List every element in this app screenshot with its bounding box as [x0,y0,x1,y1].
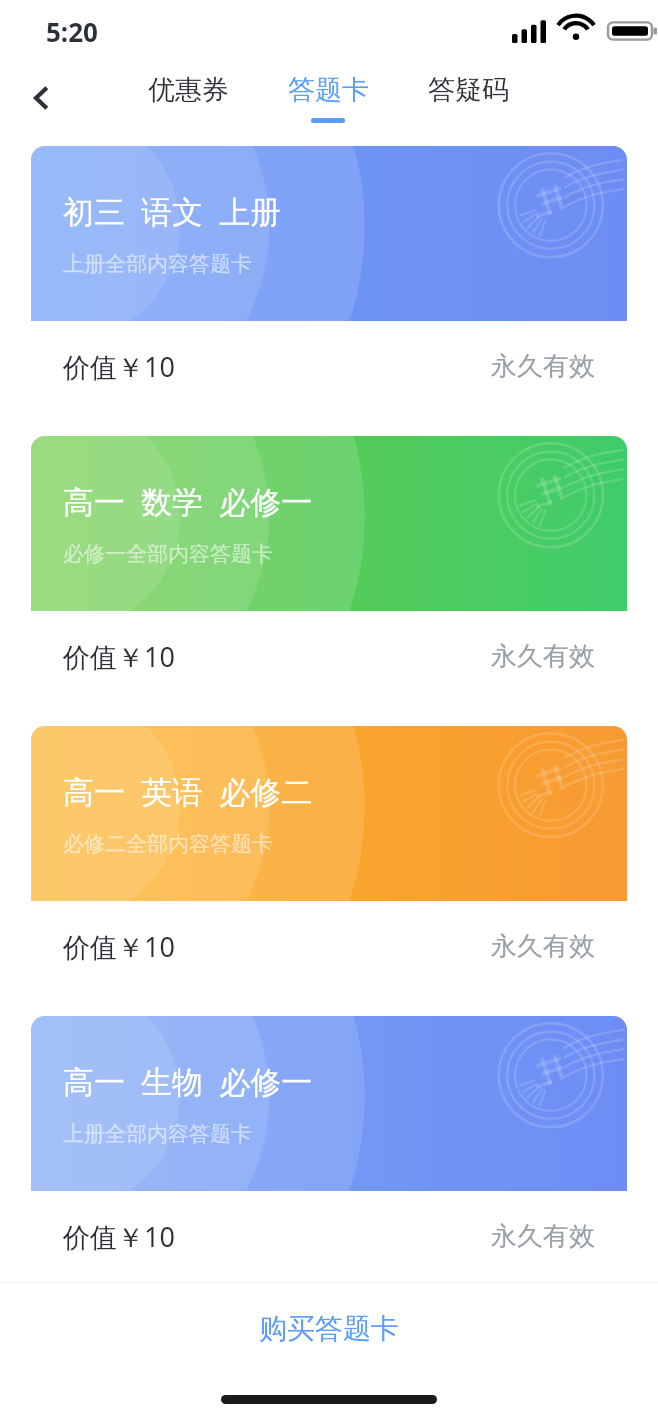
staticText: 永久有效 [491,350,595,383]
staticText: 上册全部内容答题卡 [63,251,252,277]
staticText: 永久有效 [491,1220,595,1253]
button[interactable]: 初三 语文 上册 [31,146,627,411]
staticText: 优惠券 [148,73,229,107]
button[interactable]: 高一 生物 必修一 [31,1016,627,1281]
button[interactable]: 优惠券 [142,69,234,127]
staticText: 5:20 [46,14,98,49]
button[interactable]: 答疑码 [422,69,514,127]
staticText: 价值￥10 [63,638,175,675]
staticText: 必修一全部内容答题卡 [63,541,273,567]
button[interactable]: 购买答题卡 [0,1283,658,1373]
staticText: 永久有效 [491,930,595,963]
staticText: 初三 语文 上册 [63,190,282,232]
button[interactable]: 高一 数学 必修一 [31,436,627,701]
staticText: 价值￥10 [63,348,175,385]
staticText: 答疑码 [428,73,509,107]
staticText: 高一 数学 必修一 [63,480,313,522]
staticText: 购买答题卡 [259,1311,399,1346]
button[interactable]: Back [14,70,70,126]
staticText: 上册全部内容答题卡 [63,1121,252,1147]
staticText: 必修二全部内容答题卡 [63,831,273,857]
staticText: 答题卡 [288,73,369,107]
staticText: 永久有效 [491,640,595,673]
staticText: 价值￥10 [63,928,175,965]
staticText: 高一 英语 必修二 [63,770,313,812]
button[interactable]: 答题卡 [282,69,374,127]
button[interactable]: 高一 英语 必修二 [31,726,627,991]
staticText: 高一 生物 必修一 [63,1060,313,1102]
staticText: 价值￥10 [63,1218,175,1255]
